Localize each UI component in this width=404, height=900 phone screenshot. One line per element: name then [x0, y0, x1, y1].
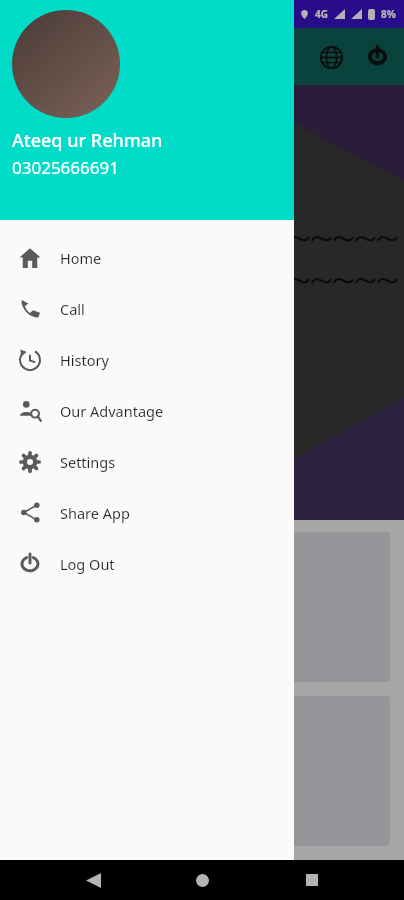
button[interactable]: Recents — [295, 863, 329, 897]
button[interactable]: EDUCATION EXPERT SUPPORT — [14, 532, 390, 682]
staticText: 4G — [315, 7, 328, 21]
staticText: 8% — [381, 7, 396, 21]
staticText: History — [60, 350, 109, 370]
staticText: Our Advantage — [60, 401, 164, 421]
button[interactable]: Home — [0, 232, 294, 283]
button[interactable]: Settings — [0, 436, 294, 487]
staticText: 03025666691 — [12, 156, 119, 179]
button[interactable]: EXAMINATION SCHEDULE — [14, 696, 390, 846]
button[interactable]: Home — [185, 863, 219, 897]
button[interactable]: Profile photo — [12, 10, 120, 118]
staticText: Share App — [60, 503, 130, 523]
button[interactable]: Log Out — [0, 538, 294, 589]
staticText: Home — [60, 248, 102, 268]
staticText: Ateeq ur Rehman — [12, 128, 163, 153]
button[interactable]: Share App — [0, 487, 294, 538]
staticText: Call — [60, 299, 85, 319]
staticText: Log Out — [60, 554, 115, 574]
staticText: 5:56 — [24, 7, 46, 22]
button[interactable]: Our Advantage — [0, 385, 294, 436]
button[interactable]: Call — [0, 283, 294, 334]
staticText: Settings — [60, 452, 116, 472]
button[interactable]: Back — [76, 863, 110, 897]
button[interactable]: Language — [316, 42, 346, 72]
button[interactable]: History — [0, 334, 294, 385]
button[interactable]: Power — [362, 42, 392, 72]
